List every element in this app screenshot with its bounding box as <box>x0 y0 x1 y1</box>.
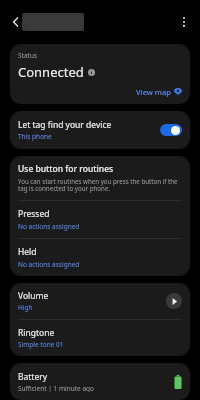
staticText: View map <box>136 87 171 97</box>
button[interactable]: Play ringtone <box>166 293 182 309</box>
staticText: Connected <box>18 63 84 81</box>
button[interactable]: More options <box>172 10 196 34</box>
staticText: Status <box>18 51 38 60</box>
staticText: Volume <box>18 290 49 302</box>
staticText: You can start routines when you press th… <box>18 177 182 193</box>
button[interactable]: Let tag find your device <box>10 111 190 149</box>
staticText: Simple tone 01 <box>18 340 64 349</box>
button[interactable]: Back <box>4 10 28 34</box>
button[interactable]: Held <box>10 239 190 276</box>
staticText: Battery <box>18 371 48 383</box>
staticText: Held <box>18 246 37 258</box>
staticText: No actions assigned <box>18 260 80 269</box>
staticText: This phone <box>18 132 52 141</box>
staticText: High <box>18 303 33 312</box>
button[interactable]: Pressed <box>10 201 190 238</box>
button[interactable]: Battery <box>10 363 190 400</box>
button[interactable]: Status <box>10 44 190 104</box>
staticText: No actions assigned <box>18 222 80 231</box>
staticText: Let tag find your device <box>18 119 112 131</box>
staticText: Sufficient | 1 minute ago <box>18 384 94 392</box>
staticText: Pressed <box>18 208 50 220</box>
button[interactable]: View map <box>18 87 182 97</box>
button[interactable]: Volume <box>10 283 190 319</box>
button[interactable]: Toggle let tag find your device <box>160 124 182 136</box>
button[interactable]: Ringtone <box>10 320 190 356</box>
staticText: Ringtone <box>18 327 55 339</box>
staticText: Use button for routines <box>18 163 114 175</box>
